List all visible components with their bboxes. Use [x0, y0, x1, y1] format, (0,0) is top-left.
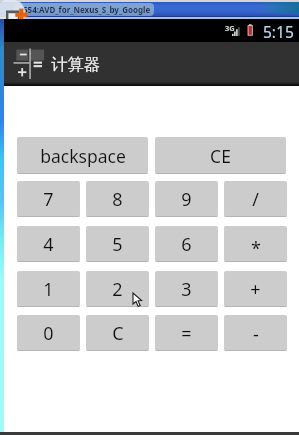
button[interactable]: = — [155, 315, 218, 351]
staticText: 5:15 — [263, 21, 294, 42]
staticText: 5 — [112, 232, 123, 257]
button[interactable]: / — [224, 181, 287, 217]
staticText: 554:AVD_for_Nexus_S_by_Google — [23, 4, 151, 15]
staticText: 6 — [181, 232, 192, 257]
button[interactable]: 9 — [155, 181, 218, 217]
staticText: 2 — [112, 277, 123, 302]
staticText: 3G — [225, 23, 235, 33]
staticText: 计算器 — [51, 54, 101, 75]
button[interactable]: 7 — [17, 181, 80, 217]
button[interactable]: 3 — [155, 271, 218, 307]
staticText: 4 — [43, 232, 54, 257]
button[interactable]: C — [86, 315, 149, 351]
staticText: 7 — [43, 187, 54, 212]
button[interactable]: 1 — [17, 271, 80, 307]
staticText: 1 — [43, 277, 54, 302]
button[interactable]: 2 — [86, 271, 149, 307]
button[interactable]: CE — [155, 137, 286, 174]
staticText: 0 — [43, 321, 54, 346]
other: Calculator — [12, 44, 56, 86]
staticText: - — [253, 322, 259, 347]
button[interactable]: 5 — [86, 226, 149, 262]
button[interactable]: + — [224, 271, 287, 307]
staticText: 3 — [181, 277, 192, 302]
staticText: CE — [210, 144, 231, 168]
staticText: C — [112, 321, 124, 346]
staticText: + — [250, 277, 261, 302]
button[interactable]: backspace — [17, 137, 148, 174]
button[interactable]: * — [224, 226, 287, 262]
staticText: = — [181, 321, 192, 346]
staticText: 9 — [181, 187, 192, 212]
staticText: / — [252, 187, 259, 212]
staticText: * — [251, 236, 261, 261]
staticText: 8 — [112, 187, 123, 212]
button[interactable]: 8 — [86, 181, 149, 217]
staticText: backspace — [40, 144, 126, 168]
button[interactable]: - — [224, 315, 287, 351]
button[interactable]: 0 — [17, 315, 80, 351]
button[interactable]: 4 — [17, 226, 80, 262]
button[interactable]: 6 — [155, 226, 218, 262]
